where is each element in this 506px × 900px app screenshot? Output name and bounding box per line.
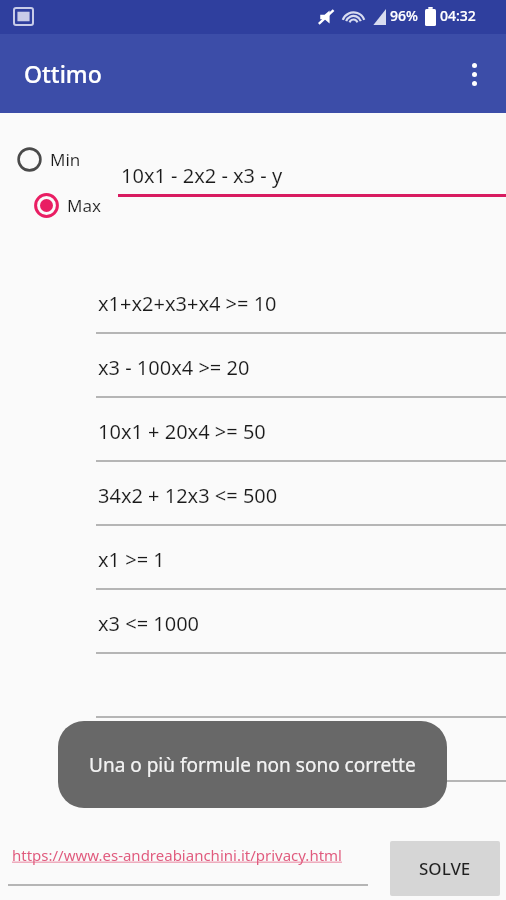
staticText: 96% xyxy=(390,6,418,25)
staticText: Max xyxy=(67,194,101,217)
staticText: 04:32 xyxy=(440,6,476,25)
staticText: 34x2 + 12x3 <= 500 xyxy=(98,482,278,509)
staticText: x1+x2+x3+x4 >= 10 xyxy=(98,290,277,317)
button[interactable]: 10x1 + 20x4 >= 50 xyxy=(96,416,506,462)
button[interactable]: x3 <= 1000 xyxy=(96,608,506,654)
staticText: Min xyxy=(50,148,81,171)
button[interactable]: Max xyxy=(29,187,119,223)
button[interactable]: https://www.es-andreabianchini.it/privac… xyxy=(8,840,368,890)
staticText: 10x1 + 20x4 >= 50 xyxy=(98,418,266,445)
button[interactable] xyxy=(96,736,506,782)
button[interactable]: 34x2 + 12x3 <= 500 xyxy=(96,480,506,526)
staticText: Una o più formule non sono corrette xyxy=(89,752,416,778)
button[interactable]: x1+x2+x3+x4 >= 10 xyxy=(96,288,506,334)
button[interactable]: More options xyxy=(450,50,498,98)
staticText: https://www.es-andreabianchini.it/privac… xyxy=(12,845,342,865)
button[interactable]: x1 >= 1 xyxy=(96,544,506,590)
staticText: Ottimo xyxy=(24,58,102,89)
button[interactable]: x3 - 100x4 >= 20 xyxy=(96,352,506,398)
button[interactable]: Min xyxy=(12,141,102,177)
staticText: x1 >= 1 xyxy=(98,546,165,573)
staticText: SOLVE xyxy=(419,857,471,880)
button[interactable]: 10x1 - 2x2 - x3 - y xyxy=(118,162,506,204)
button[interactable] xyxy=(96,672,506,718)
button[interactable]: SOLVE xyxy=(390,841,500,896)
staticText: 10x1 - 2x2 - x3 - y xyxy=(121,162,283,189)
staticText: x3 - 100x4 >= 20 xyxy=(98,354,250,381)
staticText: x3 <= 1000 xyxy=(98,610,200,637)
